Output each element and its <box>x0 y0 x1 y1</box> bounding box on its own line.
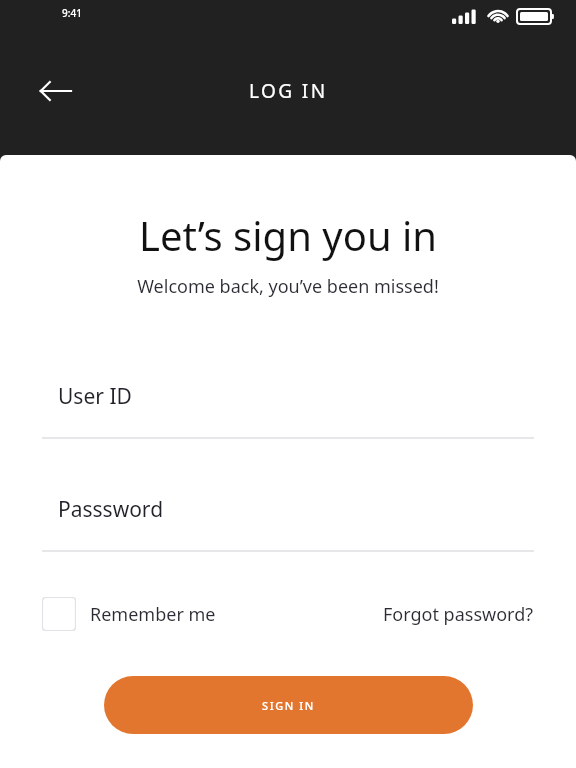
button[interactable]: User ID <box>42 382 534 439</box>
button[interactable]: Forgot password? <box>383 602 534 627</box>
staticText: Welcome back, you’ve been missed! <box>0 274 576 299</box>
staticText: SIGN IN <box>262 698 315 713</box>
staticText: LOG IN <box>249 78 328 104</box>
staticText: Let’s sign you in <box>0 208 576 262</box>
button[interactable]: Remember me <box>42 597 216 631</box>
staticText: 9:41 <box>62 6 82 20</box>
staticText: User ID <box>58 382 132 411</box>
button[interactable]: Back <box>24 67 72 115</box>
button[interactable]: Passsword <box>42 495 534 552</box>
staticText: Forgot password? <box>383 602 534 627</box>
staticText: Passsword <box>58 495 164 524</box>
button[interactable]: SIGN IN <box>104 676 473 734</box>
staticText: Remember me <box>90 602 216 627</box>
